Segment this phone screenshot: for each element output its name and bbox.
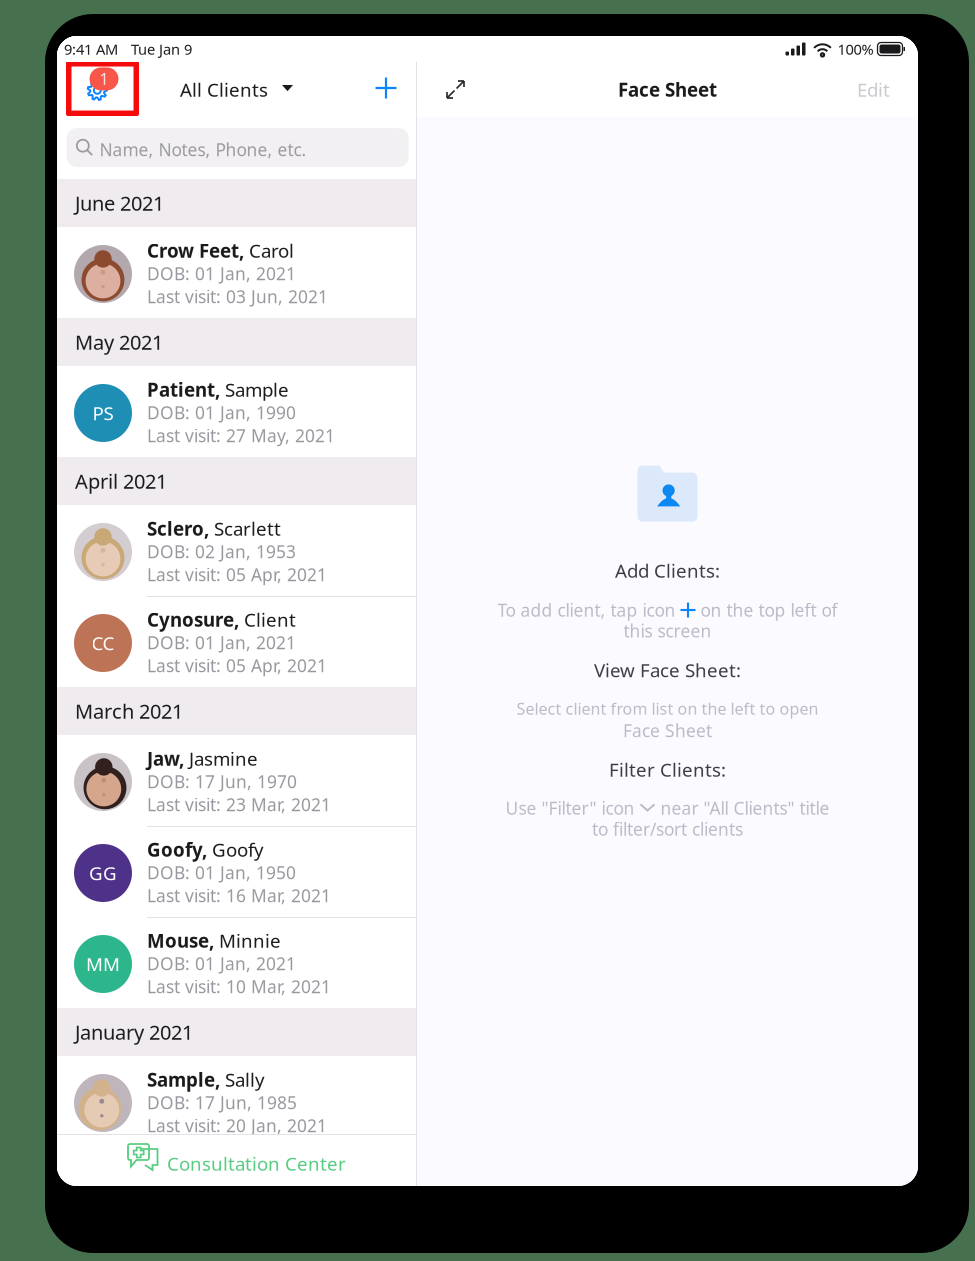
- staticText: to filter/sort clients: [592, 818, 743, 841]
- staticText: June 2021: [75, 190, 164, 216]
- staticText: near "All Clients" title: [655, 796, 829, 819]
- staticText: Mouse,: [147, 928, 214, 953]
- button[interactable]: Add client: [366, 68, 406, 108]
- staticText: March 2021: [75, 698, 183, 724]
- staticText: January 2021: [75, 1019, 193, 1045]
- staticText: Goofy: [207, 837, 264, 862]
- staticText: Last visit: 10 Mar, 2021: [147, 975, 331, 998]
- staticText: Last visit: 27 May, 2021: [147, 424, 335, 447]
- button[interactable]: CC: [57, 596, 416, 687]
- staticText: DOB: 02 Jan, 1953: [147, 540, 296, 563]
- staticText: PS: [92, 401, 113, 425]
- staticText: Filter Clients:: [609, 757, 726, 782]
- staticText: DOB: 17 Jun, 1970: [147, 770, 297, 793]
- staticText: MM: [86, 952, 120, 976]
- staticText: Client: [239, 607, 296, 632]
- staticText: CC: [91, 631, 114, 655]
- staticText: Cynosure,: [147, 607, 239, 632]
- staticText: Last visit: 05 Apr, 2021: [147, 563, 327, 586]
- staticText: Last visit: 16 Mar, 2021: [147, 884, 331, 907]
- button[interactable]: PS: [57, 366, 416, 457]
- staticText: 1: [99, 68, 108, 89]
- staticText: Face Sheet: [623, 719, 712, 742]
- staticText: DOB: 01 Jan, 1950: [147, 861, 296, 884]
- button[interactable]: Expand: [435, 69, 476, 110]
- staticText: May 2021: [75, 329, 163, 355]
- staticText: Consultation Center: [167, 1151, 346, 1176]
- staticText: DOB: 01 Jan, 2021: [147, 262, 296, 285]
- staticText: Sample: [220, 377, 289, 402]
- staticText: Minnie: [214, 928, 281, 953]
- staticText: 9:41 AM: [64, 39, 118, 59]
- staticText: Add Clients:: [615, 558, 720, 583]
- staticText: Jasmine: [184, 746, 258, 771]
- button[interactable]: Sample,: [57, 1056, 416, 1147]
- button[interactable]: All Clients: [180, 72, 300, 108]
- button[interactable]: Sclero,: [57, 505, 416, 596]
- staticText: To add client, tap icon: [497, 598, 680, 621]
- staticText: Carol: [244, 238, 294, 263]
- staticText: Sample,: [147, 1067, 220, 1092]
- staticText: All Clients: [180, 77, 268, 102]
- staticText: Use "Filter" icon: [505, 796, 639, 819]
- staticText: Edit: [857, 77, 890, 102]
- staticText: this screen: [623, 619, 711, 642]
- staticText: 100%: [837, 39, 873, 59]
- button[interactable]: Settings: [66, 61, 139, 116]
- staticText: Scarlett: [209, 516, 281, 541]
- staticText: Sally: [220, 1067, 265, 1092]
- button[interactable]: Jaw,: [57, 735, 416, 826]
- staticText: Face Sheet: [618, 77, 717, 102]
- staticText: Jaw,: [147, 746, 184, 771]
- staticText: DOB: 17 Jun, 1985: [147, 1091, 297, 1114]
- staticText: GG: [89, 861, 117, 885]
- staticText: Sclero,: [147, 516, 209, 541]
- staticText: Crow Feet,: [147, 238, 244, 263]
- button[interactable]: GG: [57, 826, 416, 917]
- staticText: DOB: 01 Jan, 2021: [147, 952, 296, 975]
- staticText: DOB: 01 Jan, 1990: [147, 401, 296, 424]
- staticText: Tue Jan 9: [131, 39, 192, 59]
- staticText: April 2021: [75, 468, 167, 494]
- staticText: on the top left of: [695, 598, 837, 621]
- staticText: Goofy,: [147, 837, 207, 862]
- staticText: Name, Notes, Phone, etc.: [100, 138, 307, 161]
- staticText: Select client from list on the left to o…: [516, 698, 818, 719]
- staticText: Patient,: [147, 377, 220, 402]
- button[interactable]: Edit: [847, 67, 900, 112]
- staticText: DOB: 01 Jan, 2021: [147, 631, 296, 654]
- staticText: Last visit: 03 Jun, 2021: [147, 285, 328, 308]
- button[interactable]: Consultation Center: [57, 1134, 416, 1186]
- button[interactable]: Crow Feet,: [57, 227, 416, 318]
- staticText: View Face Sheet:: [594, 658, 741, 682]
- staticText: Last visit: 05 Apr, 2021: [147, 654, 327, 677]
- staticText: Last visit: 20 Jan, 2021: [147, 1114, 327, 1137]
- staticText: Last visit: 23 Mar, 2021: [147, 793, 331, 816]
- button[interactable]: MM: [57, 917, 416, 1008]
